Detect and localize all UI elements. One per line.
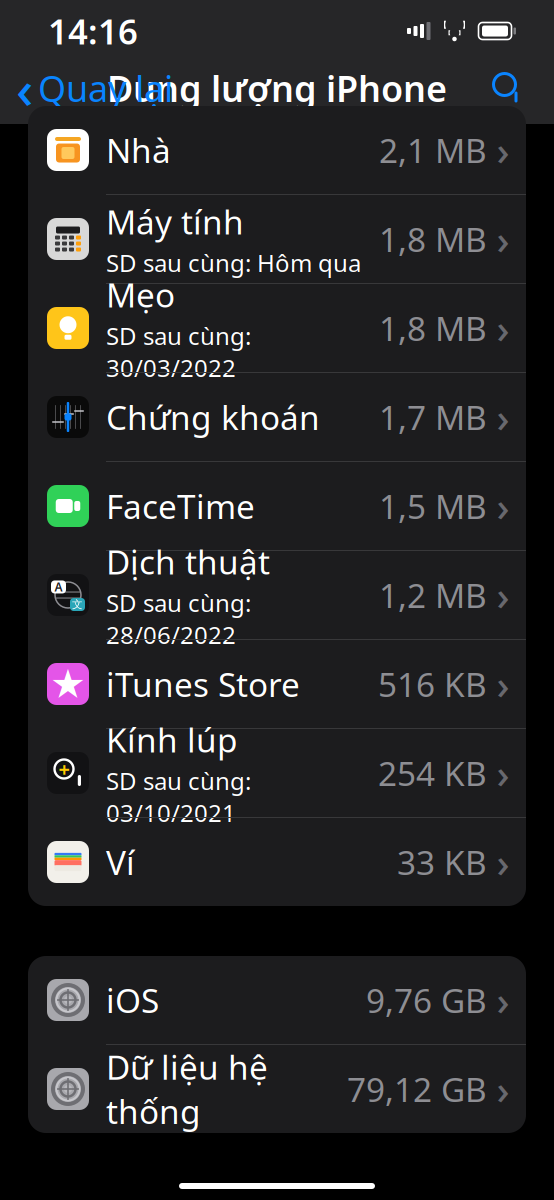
staticText: A [54, 579, 62, 595]
button[interactable]: + [28, 729, 526, 817]
staticText: › [496, 123, 509, 176]
staticText: › [496, 746, 509, 799]
staticText: ‹ [16, 53, 33, 123]
button[interactable]: Ví [28, 818, 526, 906]
staticText: 1,7 MB [379, 395, 487, 439]
staticText: › [496, 568, 509, 621]
staticText: SD sau cùng: Hôm qua [106, 247, 361, 279]
staticText: 1,8 MB [379, 217, 487, 261]
button[interactable]: Chứng khoán [28, 373, 526, 461]
staticText: + [58, 756, 69, 782]
button[interactable]: Mẹo [28, 284, 526, 372]
staticText: Kính lúp [106, 717, 238, 762]
staticText: 254 KB [378, 751, 487, 795]
staticText: Mẹo [106, 272, 175, 317]
staticText: 文 [72, 598, 83, 611]
staticText: Ví [106, 840, 135, 884]
button[interactable]: A [28, 551, 526, 639]
staticText: › [496, 212, 509, 265]
button[interactable]: iOS [28, 956, 526, 1044]
staticText: › [496, 973, 509, 1026]
staticText: 33 KB [397, 840, 487, 884]
button[interactable]: Nhà [28, 106, 526, 194]
staticText: 14:16 [48, 8, 138, 54]
staticText: Chứng khoán [106, 395, 320, 439]
button[interactable]: Máy tính [28, 195, 526, 283]
staticText: › [496, 301, 509, 354]
button[interactable]: ‹ [0, 62, 183, 114]
button[interactable]: Tìm kiếm [482, 62, 554, 114]
staticText: › [496, 657, 509, 710]
staticText: 79,12 GB [347, 1067, 487, 1111]
staticText: 9,76 GB [366, 978, 487, 1022]
staticText: Dung lượng iPhone [107, 64, 447, 112]
staticText: › [496, 479, 509, 532]
staticText: ★ [50, 661, 86, 707]
staticText: SD sau cùng: 30/03/2022 [106, 320, 251, 383]
staticText: › [496, 390, 509, 443]
staticText: 2,1 MB [379, 128, 487, 172]
staticText: Nhà [106, 128, 171, 172]
staticText: › [496, 835, 509, 888]
staticText: Dữ liệu hệ thống [106, 1045, 268, 1133]
staticText: SD sau cùng: 03/10/2021 [106, 765, 251, 828]
staticText: FaceTime [106, 484, 255, 528]
staticText: Máy tính [106, 199, 244, 244]
staticText: iTunes Store [106, 662, 300, 706]
staticText: Quay lại [38, 64, 173, 112]
staticText: 1,5 MB [379, 484, 487, 528]
staticText: iOS [106, 978, 159, 1022]
staticText: Dịch thuật [106, 539, 270, 584]
staticText: 1,2 MB [379, 573, 487, 617]
button[interactable]: FaceTime [28, 462, 526, 550]
staticText: SD sau cùng: 28/06/2022 [106, 587, 251, 650]
staticText: › [496, 1062, 509, 1115]
button[interactable]: Dữ liệu hệ thống [28, 1045, 526, 1133]
button[interactable]: ★ [28, 640, 526, 728]
staticText: 516 KB [378, 662, 487, 706]
staticText: 1,8 MB [379, 306, 487, 350]
